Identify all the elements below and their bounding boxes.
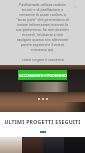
- button[interactable]: ACCONSENTO E PROSEGUO: [18, 70, 67, 80]
- staticText: ULTIMI PROGETTI ESEGUITI: [0, 118, 85, 125]
- button[interactable]: Chiudi: [72, 3, 79, 10]
- button[interactable]: come negare il consenso: [22, 57, 64, 62]
- staticText: ACCONSENTO E PROSEGUO: [19, 73, 67, 78]
- staticText: Fashionweb utilizza cookies tecnici e di…: [16, 2, 69, 52]
- button[interactable]: [22, 137, 43, 153]
- button[interactable]: [0, 137, 22, 153]
- button[interactable]: [43, 137, 64, 153]
